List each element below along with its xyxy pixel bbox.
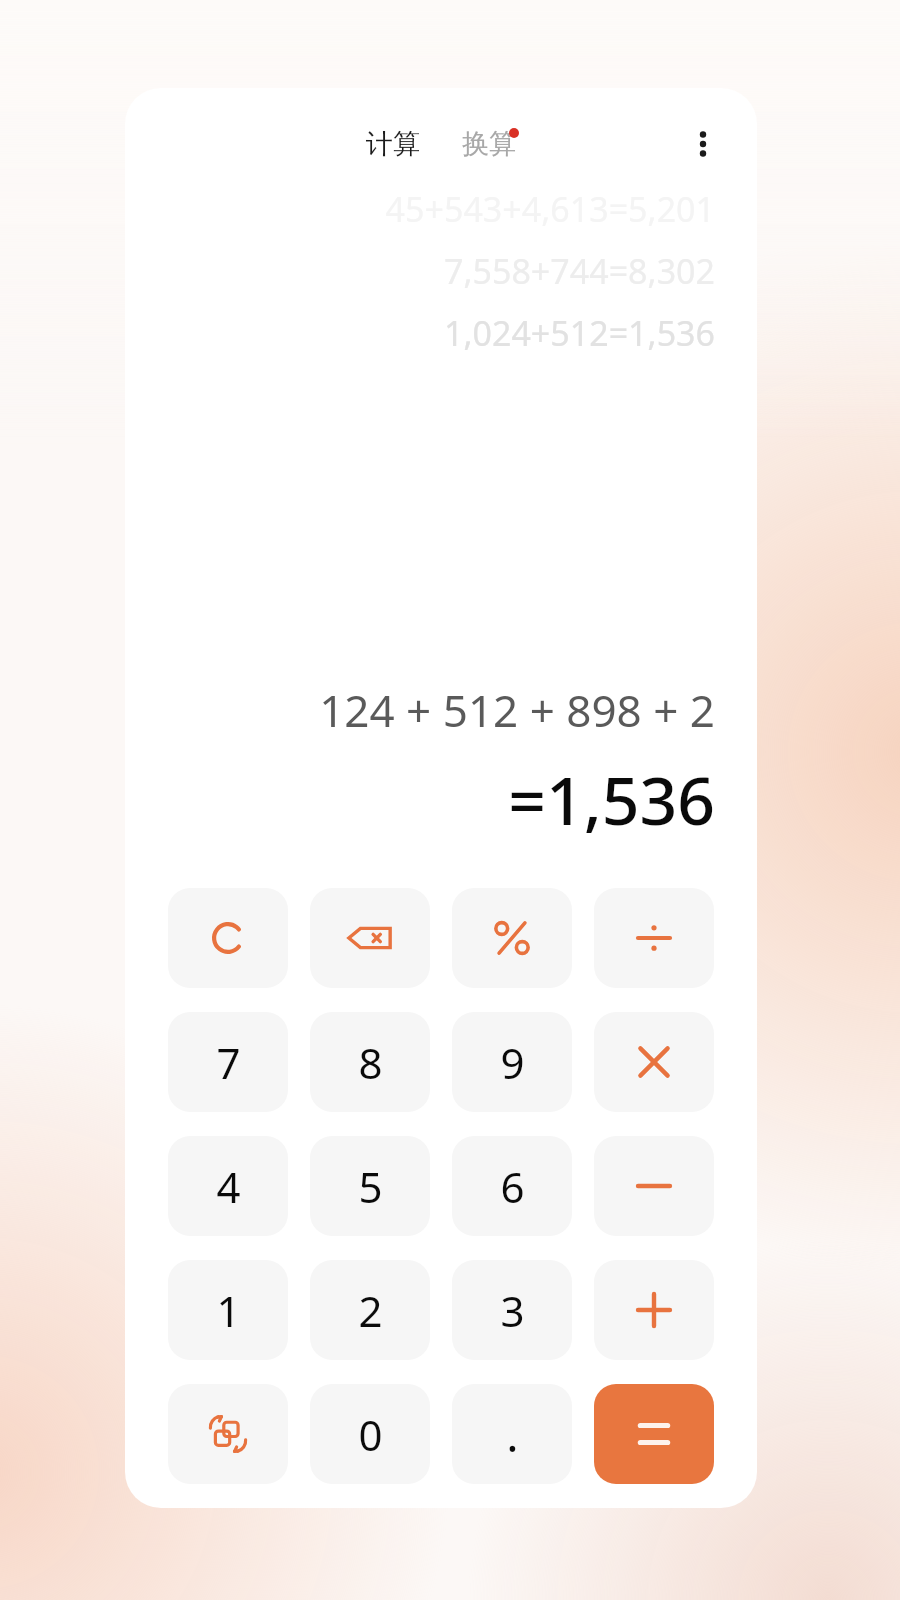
staticText: 2 <box>358 1282 383 1339</box>
staticText: 7 <box>216 1034 241 1091</box>
button[interactable]: Plus <box>594 1260 714 1360</box>
other: Minus <box>632 1164 676 1208</box>
staticText: 7,558+744=8,302 <box>443 248 715 294</box>
other: Percent <box>490 916 534 960</box>
other: Unit conversion <box>204 1410 252 1458</box>
button[interactable]: 6 <box>452 1136 572 1236</box>
button[interactable]: 4 <box>168 1136 288 1236</box>
staticText: 8 <box>358 1034 383 1091</box>
button[interactable]: Multiply <box>594 1012 714 1112</box>
staticText: 5 <box>358 1158 383 1215</box>
staticText: 124 + 512 + 898 + 2 <box>319 680 715 740</box>
staticText: 3 <box>500 1282 525 1339</box>
staticText: =1,536 <box>508 754 715 844</box>
other: Clear <box>206 916 250 960</box>
other: Divide <box>632 916 676 960</box>
button[interactable]: 45+543+4,613=5,201 <box>385 186 715 232</box>
button[interactable]: 换算 <box>456 123 522 165</box>
button[interactable]: Backspace <box>310 888 430 988</box>
staticText: 换算 <box>462 127 516 161</box>
button[interactable]: 2 <box>310 1260 430 1360</box>
button[interactable]: . <box>452 1384 572 1484</box>
button[interactable]: Clear <box>168 888 288 988</box>
button[interactable]: 0 <box>310 1384 430 1484</box>
staticText: 45+543+4,613=5,201 <box>385 186 715 232</box>
other: Multiply <box>632 1040 676 1084</box>
button[interactable]: 1 <box>168 1260 288 1360</box>
staticText: . <box>506 1403 519 1466</box>
staticText: 9 <box>500 1034 525 1091</box>
button[interactable]: More options <box>675 116 731 172</box>
button[interactable]: 计算 <box>360 123 426 165</box>
button[interactable]: 3 <box>452 1260 572 1360</box>
staticText: 1 <box>216 1282 241 1339</box>
other: Backspace <box>344 912 396 964</box>
staticText: 4 <box>216 1158 241 1215</box>
staticText: 1,024+512=1,536 <box>443 310 715 356</box>
button[interactable]: Minus <box>594 1136 714 1236</box>
button[interactable]: Unit conversion <box>168 1384 288 1484</box>
button[interactable]: 1,024+512=1,536 <box>443 310 715 356</box>
button[interactable]: 9 <box>452 1012 572 1112</box>
staticText: 计算 <box>366 127 420 161</box>
button[interactable]: 5 <box>310 1136 430 1236</box>
button[interactable]: 8 <box>310 1012 430 1112</box>
other: Plus <box>632 1288 676 1332</box>
staticText: 6 <box>500 1158 525 1215</box>
button[interactable]: Equals <box>594 1384 714 1484</box>
staticText: 0 <box>358 1406 383 1463</box>
button[interactable]: 7 <box>168 1012 288 1112</box>
button[interactable]: Percent <box>452 888 572 988</box>
button[interactable]: 7,558+744=8,302 <box>443 248 715 294</box>
button[interactable]: Divide <box>594 888 714 988</box>
